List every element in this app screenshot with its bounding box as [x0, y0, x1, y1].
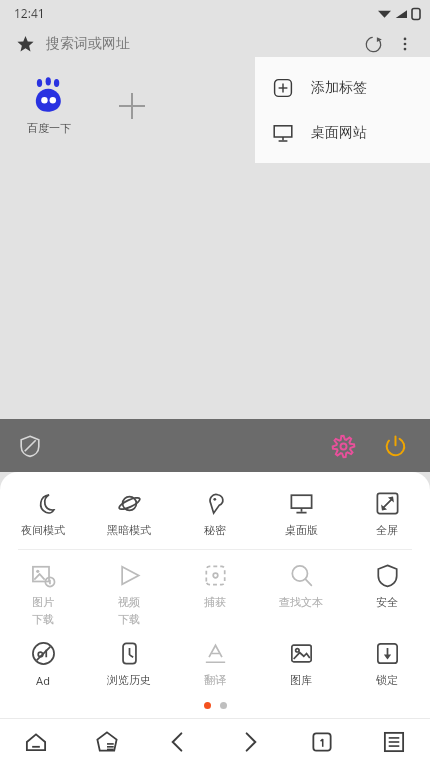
- button[interactable]: 黑暗模式: [86, 486, 172, 543]
- button[interactable]: Bookmarks: [10, 29, 40, 59]
- staticText: 添加标签: [311, 79, 367, 97]
- button[interactable]: 桌面网站: [255, 110, 430, 155]
- staticText: 查找文本: [279, 595, 323, 609]
- button[interactable]: Home: [0, 718, 71, 766]
- button[interactable]: Back: [142, 718, 214, 766]
- staticText: 安全: [376, 595, 398, 609]
- staticText: 锁定: [376, 673, 398, 687]
- button[interactable]: Privacy shield: [12, 428, 48, 464]
- button[interactable]: 视频: [86, 558, 172, 632]
- button[interactable]: Forward: [214, 718, 286, 766]
- staticText: 翻译: [204, 673, 226, 687]
- button[interactable]: Menu: [358, 718, 430, 766]
- button[interactable]: Exit: [376, 427, 414, 465]
- staticText: 桌面网站: [311, 124, 367, 142]
- button[interactable]: Refresh: [356, 27, 390, 61]
- button[interactable]: 图片: [0, 558, 86, 632]
- staticText: 12:41: [14, 5, 45, 21]
- button[interactable]: Bookmarks: [71, 718, 142, 766]
- button[interactable]: Ad: [0, 636, 86, 694]
- staticText: 图片: [32, 595, 54, 609]
- button[interactable]: 图库: [258, 636, 344, 693]
- staticText: 下载: [32, 612, 54, 626]
- staticText: 图库: [290, 673, 312, 687]
- button[interactable]: 锁定: [344, 636, 430, 693]
- button[interactable]: 捕获: [172, 558, 258, 615]
- staticText: Ad: [36, 673, 50, 688]
- button[interactable]: 全屏: [344, 486, 430, 543]
- button[interactable]: 浏览历史: [86, 636, 172, 693]
- button[interactable]: 百度一下: [20, 76, 78, 135]
- button[interactable]: 搜索词或网址: [46, 26, 356, 62]
- button[interactable]: 添加标签: [255, 65, 430, 110]
- button[interactable]: 桌面版: [258, 486, 344, 543]
- staticText: 全屏: [376, 523, 398, 537]
- staticText: 夜间模式: [21, 523, 65, 537]
- staticText: 视频: [118, 595, 140, 609]
- staticText: 桌面版: [285, 523, 318, 537]
- button[interactable]: 翻译: [172, 636, 258, 693]
- button[interactable]: Tabs: [286, 718, 358, 766]
- button[interactable]: 夜间模式: [0, 486, 86, 543]
- button[interactable]: 秘密: [172, 486, 258, 543]
- staticText: 捕获: [204, 595, 226, 609]
- staticText: 下载: [118, 612, 140, 626]
- button[interactable]: 安全: [344, 558, 430, 615]
- staticText: 搜索词或网址: [46, 35, 130, 53]
- button[interactable]: Settings: [324, 427, 362, 465]
- button[interactable]: Add shortcut: [110, 84, 154, 128]
- staticText: 秘密: [204, 523, 226, 537]
- staticText: 百度一下: [27, 121, 71, 135]
- staticText: 浏览历史: [107, 673, 151, 687]
- button[interactable]: 查找文本: [258, 558, 344, 615]
- staticText: 黑暗模式: [107, 523, 151, 537]
- button[interactable]: More options: [390, 29, 420, 59]
